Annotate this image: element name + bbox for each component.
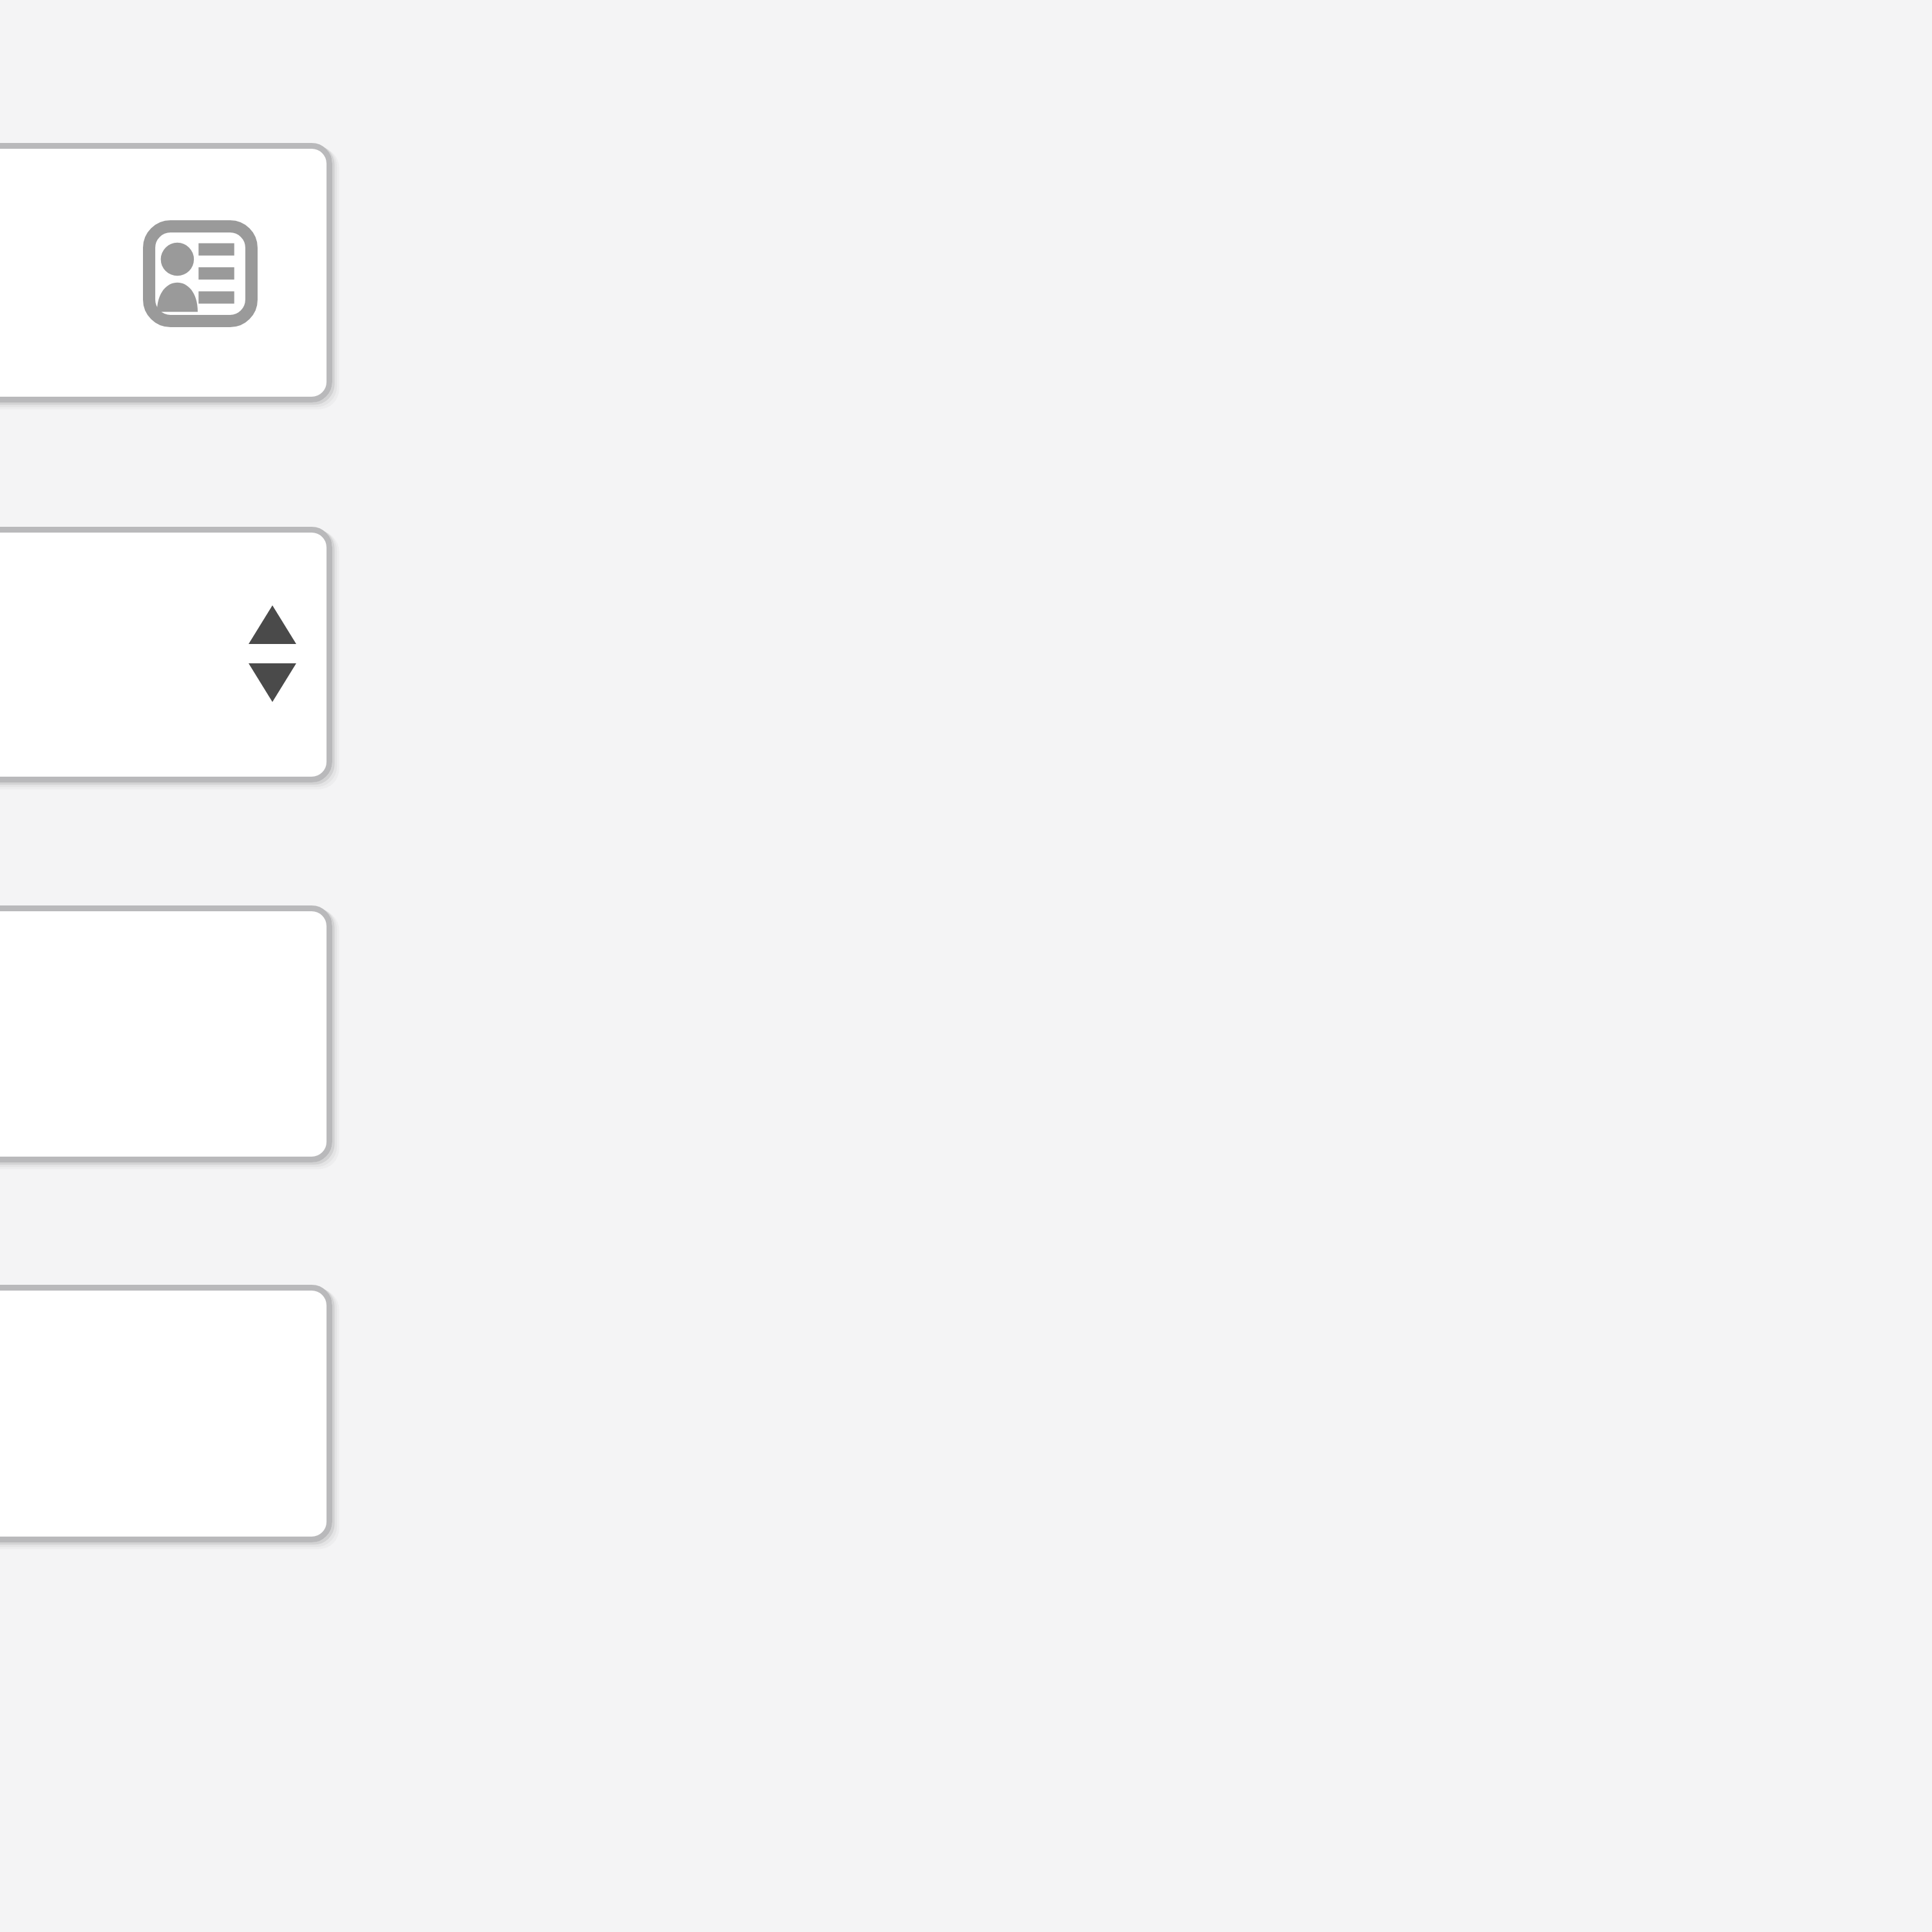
button[interactable]: Choose contact	[0, 143, 332, 402]
button[interactable]	[0, 1285, 332, 1542]
button[interactable]: Increment or decrement value	[249, 605, 296, 702]
button[interactable]	[0, 905, 332, 1162]
button[interactable]: Choose contact	[143, 220, 258, 327]
button[interactable]: Increment or decrement value	[0, 527, 332, 782]
